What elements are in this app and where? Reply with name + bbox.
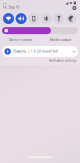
button[interactable]: Brightness — [2, 27, 78, 34]
button[interactable]: Bluetooth — [41, 13, 52, 24]
staticText: 2:51 — [2, 1, 6, 5]
button[interactable]: Charging | 1 h 24 m until full — [2, 46, 78, 57]
button[interactable]: Settings — [72, 6, 76, 10]
button[interactable]: Do not disturb — [66, 13, 77, 24]
staticText: Device control — [9, 38, 32, 42]
staticText: Charging | 1 h 24 m until full — [13, 50, 58, 53]
staticText: Media output — [50, 38, 71, 42]
button[interactable]: Media output — [50, 37, 71, 43]
staticText: Fri, Sep 15 — [2, 5, 19, 9]
button[interactable]: Auto rotate — [28, 13, 39, 24]
button[interactable]: Flashlight — [53, 13, 64, 24]
button[interactable]: Wi-Fi — [3, 13, 14, 24]
button[interactable]: Sound — [16, 13, 27, 24]
button[interactable]: Notification settings — [48, 58, 76, 63]
staticText: Notification settings — [48, 59, 76, 63]
button[interactable]: Device control — [9, 37, 32, 43]
